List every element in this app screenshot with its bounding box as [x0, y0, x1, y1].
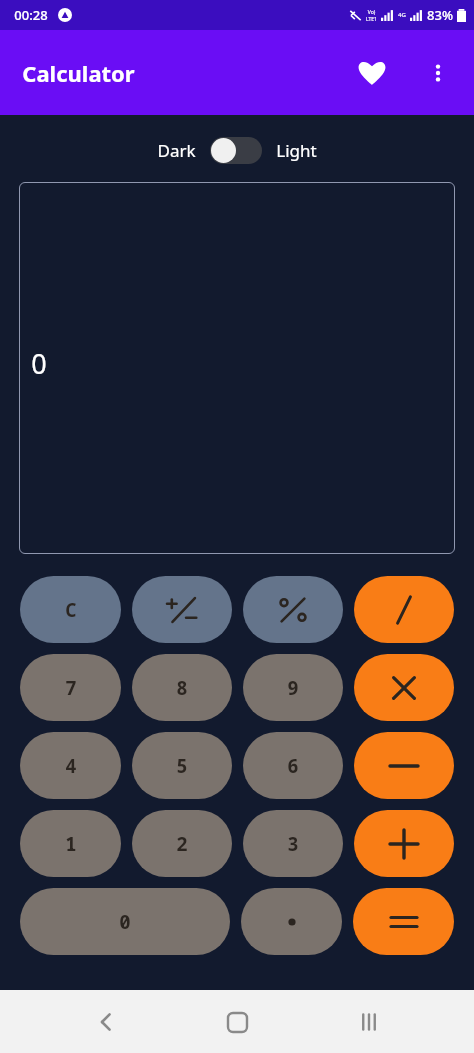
other: -	[390, 761, 418, 771]
staticText: Calculator	[22, 58, 135, 88]
button[interactable]: 5	[132, 732, 232, 799]
other: .	[286, 916, 298, 928]
button[interactable]: C	[20, 576, 121, 643]
other: /	[394, 595, 414, 625]
staticText: 83%	[427, 6, 453, 24]
button[interactable]: Back	[80, 996, 132, 1048]
button[interactable]: 2	[132, 810, 232, 877]
staticText: 8	[176, 675, 188, 701]
staticText: 2	[176, 831, 188, 857]
button[interactable]: 6	[243, 732, 343, 799]
button[interactable]: 8	[132, 654, 232, 721]
staticText: C	[65, 597, 77, 623]
button[interactable]: +	[354, 810, 454, 877]
button[interactable]	[210, 137, 262, 164]
staticText: Light	[276, 139, 317, 162]
staticText: 4	[65, 753, 77, 779]
button[interactable]: 9	[243, 654, 343, 721]
staticText: Vo) LTE1	[366, 9, 377, 22]
staticText: 3	[287, 831, 299, 857]
other: %	[278, 597, 308, 623]
button[interactable]: ×	[354, 654, 454, 721]
staticText: 0	[31, 345, 47, 382]
button[interactable]: 0	[20, 888, 230, 955]
button[interactable]: Favorite	[348, 49, 396, 97]
staticText: 5	[176, 753, 188, 779]
staticText: 00:28	[14, 6, 48, 24]
staticText: Dark	[157, 139, 196, 162]
button[interactable]: Recents	[343, 996, 395, 1048]
button[interactable]: More options	[414, 49, 462, 97]
staticText: 6	[287, 753, 299, 779]
button[interactable]: /	[354, 576, 454, 643]
button[interactable]: 7	[20, 654, 121, 721]
other: +/-	[165, 597, 199, 623]
staticText: 7	[65, 675, 77, 701]
other: +	[390, 830, 418, 858]
button[interactable]: .	[241, 888, 342, 955]
button[interactable]: Home	[211, 996, 263, 1048]
other: =	[391, 914, 417, 930]
button[interactable]: =	[353, 888, 454, 955]
staticText: 4G	[398, 11, 406, 19]
other: ×	[391, 675, 417, 701]
button[interactable]: 3	[243, 810, 343, 877]
button[interactable]: %	[243, 576, 343, 643]
button[interactable]: -	[354, 732, 454, 799]
staticText: 1	[65, 831, 77, 857]
button[interactable]: 1	[20, 810, 121, 877]
button[interactable]: +/-	[132, 576, 232, 643]
staticText: 0	[119, 909, 131, 935]
button[interactable]: 4	[20, 732, 121, 799]
staticText: 9	[287, 675, 299, 701]
